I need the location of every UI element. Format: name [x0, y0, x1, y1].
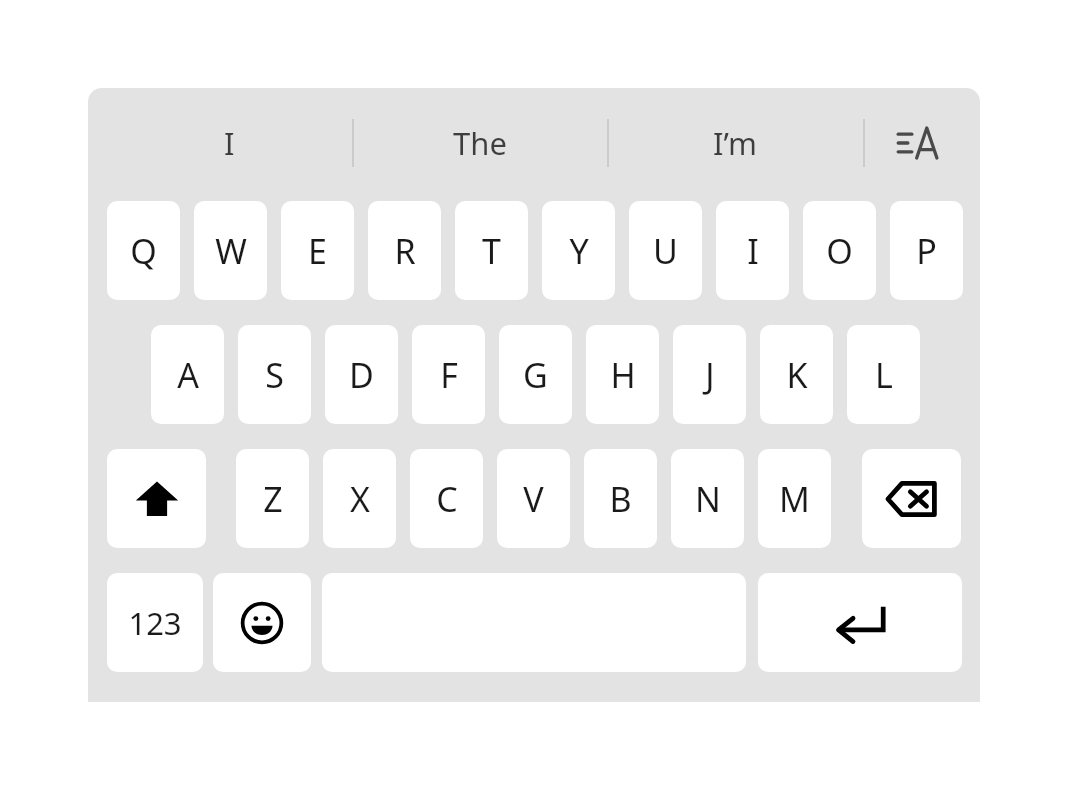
staticText: Z	[263, 476, 283, 522]
button[interactable]: I	[107, 113, 352, 173]
staticText: J	[705, 352, 715, 398]
button[interactable]: I	[716, 201, 789, 300]
button[interactable]: W	[194, 201, 267, 300]
button[interactable]: The	[352, 113, 607, 173]
button[interactable]: S	[238, 325, 311, 424]
staticText: T	[482, 228, 501, 274]
staticText: G	[523, 352, 548, 398]
button[interactable]: P	[890, 201, 963, 300]
staticText: L	[875, 352, 893, 398]
staticText: U	[653, 228, 678, 274]
button[interactable]: F	[412, 325, 485, 424]
staticText: H	[610, 352, 636, 398]
staticText: W	[215, 228, 247, 274]
button[interactable]: U	[629, 201, 702, 300]
staticText: E	[308, 228, 327, 274]
staticText: F	[440, 352, 458, 398]
staticText: V	[523, 476, 544, 522]
button[interactable]: H	[586, 325, 659, 424]
button[interactable]: B	[584, 449, 657, 548]
button[interactable]: Backspace	[862, 449, 961, 548]
staticText: R	[394, 228, 416, 274]
staticText: A	[177, 352, 199, 398]
staticText: O	[826, 228, 853, 274]
button[interactable]: V	[497, 449, 570, 548]
staticText: N	[695, 476, 721, 522]
staticText: X	[350, 476, 370, 522]
button[interactable]: 123	[107, 573, 203, 672]
button[interactable]: N	[671, 449, 744, 548]
button[interactable]: O	[803, 201, 876, 300]
staticText: B	[609, 476, 632, 522]
staticText: I	[747, 228, 759, 274]
staticText: I	[224, 122, 235, 164]
staticText: K	[786, 352, 808, 398]
button[interactable]: Q	[107, 201, 180, 300]
button[interactable]: L	[847, 325, 920, 424]
staticText: The	[453, 122, 507, 164]
button[interactable]: D	[325, 325, 398, 424]
button[interactable]: J	[673, 325, 746, 424]
button[interactable]: I’m	[607, 113, 863, 173]
button[interactable]: G	[499, 325, 572, 424]
staticText: S	[265, 352, 284, 398]
button[interactable]: Enter	[758, 573, 962, 672]
staticText: Y	[569, 228, 589, 274]
staticText: M	[779, 476, 810, 522]
button[interactable]: Shift	[107, 449, 206, 548]
staticText: I’m	[713, 122, 757, 164]
button[interactable]: X	[323, 449, 396, 548]
button[interactable]: C	[410, 449, 483, 548]
button[interactable]: A	[151, 325, 224, 424]
staticText: 123	[128, 602, 182, 644]
staticText: P	[916, 228, 937, 274]
button[interactable]: E	[281, 201, 354, 300]
staticText: Q	[130, 228, 157, 274]
button[interactable]: R	[368, 201, 441, 300]
button[interactable]: Text editing options	[873, 113, 963, 173]
staticText: C	[436, 476, 458, 522]
button[interactable]: Emoji	[213, 573, 311, 672]
button[interactable]: T	[455, 201, 528, 300]
staticText: D	[349, 352, 374, 398]
button[interactable]: K	[760, 325, 833, 424]
button[interactable]: Z	[236, 449, 309, 548]
button[interactable]: Y	[542, 201, 615, 300]
button[interactable]: M	[758, 449, 831, 548]
